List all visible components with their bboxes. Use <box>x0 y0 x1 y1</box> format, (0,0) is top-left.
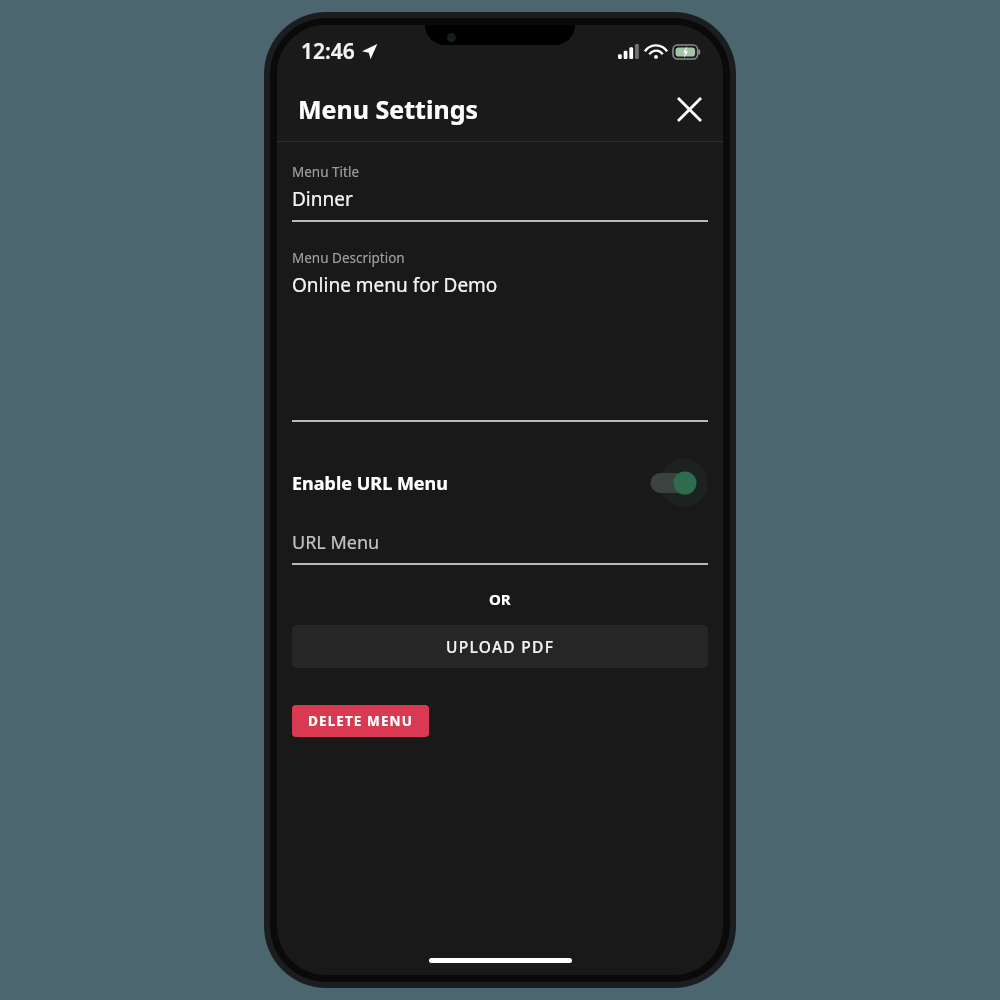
staticText: Enable URL Menu <box>292 471 449 496</box>
staticText: OR <box>489 589 511 609</box>
button[interactable]: Close <box>667 87 711 131</box>
staticText: UPLOAD PDF <box>446 636 555 657</box>
button[interactable]: Menu Description <box>292 249 708 422</box>
staticText: Dinner <box>292 186 353 212</box>
staticText: Menu Settings <box>298 92 478 126</box>
staticText: URL Menu <box>292 530 380 555</box>
staticText: Menu Description <box>292 249 405 267</box>
button[interactable]: URL Menu <box>292 530 708 565</box>
button[interactable]: Enable URL Menu <box>292 458 708 508</box>
staticText: Online menu for Demo <box>292 272 498 298</box>
button[interactable]: Menu Title <box>292 163 708 222</box>
button[interactable]: UPLOAD PDF <box>292 625 708 668</box>
button[interactable]: DELETE MENU <box>292 705 429 737</box>
staticText: 12:46 <box>301 37 355 66</box>
staticText: DELETE MENU <box>308 712 413 730</box>
staticText: Menu Title <box>292 163 360 181</box>
